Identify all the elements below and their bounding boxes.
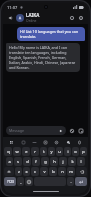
button[interactable]: s [14,157,22,166]
staticText: h [53,159,56,164]
button[interactable]: n [58,167,66,176]
staticText: g [44,159,47,164]
staticText: s [17,159,19,164]
button[interactable]: Keyboard tool 7 [76,139,83,146]
staticText: . [70,179,72,184]
button[interactable]: Keyboard tool 2 [20,139,27,146]
button[interactable]: Keyboard tool 4 [42,139,49,146]
button[interactable]: v [40,167,48,176]
staticText: Hello! My name is LAIKA, and I can trans… [9,45,77,70]
staticText: q [7,149,10,154]
staticText: Online [26,18,37,23]
button[interactable]: ?123 [4,177,16,186]
staticText: y [50,149,53,154]
button[interactable]: e [22,147,30,156]
staticText: d [26,159,29,164]
button[interactable]: . [67,177,74,186]
button[interactable]: Message [6,126,66,135]
button[interactable]: t [40,147,47,156]
staticText: w [15,149,19,154]
staticText: x [25,169,28,174]
staticText: Message [9,128,24,133]
staticText: i [67,149,69,154]
button[interactable]: Emoji [25,177,33,186]
staticText: 11:07 [7,5,18,10]
button[interactable]: Camera [77,127,85,135]
staticText: m [69,169,73,174]
staticText: t [43,149,45,154]
staticText: Hi! List 10 languages that you can trans… [20,29,82,39]
staticText: c [34,169,36,174]
other: Send [59,129,63,133]
staticText: f [35,159,37,164]
staticText: b [52,169,55,174]
button[interactable]: Hi! List 10 languages that you can trans… [17,27,85,41]
staticText: j [62,159,64,164]
button[interactable]: b [49,167,57,176]
button[interactable]: r [31,147,39,156]
button[interactable]: x [23,167,30,176]
button[interactable]: Voice call [67,13,76,22]
button[interactable]: Hello! My name is LAIKA, and I can trans… [6,43,80,72]
button[interactable]: , [17,177,24,186]
button[interactable]: Backspace [76,167,87,176]
button[interactable]: More options [76,13,85,22]
button[interactable]: Keyboard tool 6 [65,139,72,146]
button[interactable]: m [67,167,75,176]
button[interactable]: y [48,147,55,156]
button[interactable]: Keyboard tool 1 [8,139,15,146]
staticText: r [34,149,36,154]
button[interactable]: Keyboard tool 5 [53,139,60,146]
button[interactable]: o [72,147,79,156]
button[interactable]: c [31,167,39,176]
button[interactable]: w [13,147,21,156]
button[interactable]: i [64,147,71,156]
button[interactable]: Shift [4,167,14,176]
button[interactable]: Enter [75,177,87,186]
button[interactable]: Keyboard tool 3 [31,139,38,146]
button[interactable]: l [77,157,85,166]
button[interactable]: q [4,147,12,156]
button[interactable]: a [6,157,13,166]
staticText: v [43,169,46,174]
button[interactable]: u [56,147,63,156]
staticText: p [82,149,85,154]
button[interactable]: g [41,157,49,166]
staticText: LAIKA [26,12,40,18]
staticText: o [74,149,77,154]
button[interactable]: d [23,157,31,166]
staticText: n [61,169,64,174]
button[interactable]: f [32,157,40,166]
button[interactable]: p [80,147,87,156]
staticText: l [80,159,82,164]
staticText: a [8,159,11,164]
staticText: , [20,179,22,184]
staticText: e [25,149,28,154]
button[interactable]: Back [6,13,15,22]
button[interactable]: k [68,157,76,166]
button[interactable]: j [59,157,67,166]
staticText: k [71,159,74,164]
staticText: z [18,169,20,174]
staticText: ?123 [7,180,14,184]
button[interactable]: z [15,167,22,176]
button[interactable]: h [50,157,58,166]
staticText: u [58,149,61,154]
button[interactable]: Attach [68,127,76,135]
